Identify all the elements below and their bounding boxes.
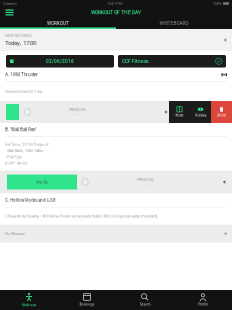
staticText: Heaviest load for 1 rep [5, 89, 42, 94]
staticText: 3 Rounds for Quality - 30 Hollow Rocks (… [5, 214, 157, 219]
staticText: Search [139, 302, 150, 306]
staticText: ▾ [14, 1, 17, 5]
staticText: (CAP: 8min) [5, 161, 27, 166]
staticText: NEXT BOOKING [5, 34, 32, 38]
staticText: Note [175, 113, 183, 117]
staticText: 02/06/2016 [46, 58, 74, 64]
button[interactable]: Note [169, 101, 190, 123]
staticText: CCF Fitness [122, 58, 148, 64]
button[interactable]: NEXT BOOKING [0, 29, 232, 51]
staticText: C. Hollow Rocks and L-Sit [5, 198, 55, 203]
button[interactable]: Workouts [0, 290, 58, 310]
staticText: Profile [198, 302, 208, 306]
button[interactable]: 0m 0s [7, 175, 77, 190]
staticText: Carrier [3, 1, 14, 6]
button[interactable]: Menu [0, 7, 19, 18]
staticText: History [194, 113, 206, 117]
button[interactable]: History [190, 101, 211, 123]
staticText: 9:41 PM [107, 1, 122, 6]
staticText: Bookings [79, 302, 94, 306]
button[interactable]: CCF Fitness [118, 55, 226, 67]
staticText: - Wall Balls, 12lb/14lbs [5, 148, 43, 153]
staticText: --/-- [142, 182, 148, 187]
button[interactable]: 02/06/2016 [6, 55, 114, 67]
staticText: 0m 0s [36, 180, 47, 185]
button[interactable]: WHITEBOARD [116, 18, 232, 29]
staticText: A. 1RM Thruster [5, 72, 38, 77]
button[interactable]: Delete [211, 101, 232, 123]
staticText: Today, 17:00 [5, 39, 36, 46]
staticText: B. "Wall Ball Fran" [5, 127, 36, 132]
staticText: Workouts [21, 303, 36, 307]
button[interactable]: No Measure [0, 225, 232, 243]
staticText: No Measure [5, 231, 25, 236]
button[interactable]: WORKOUT [0, 18, 116, 29]
staticText: Delete [216, 113, 226, 117]
staticText: --/-- [74, 112, 80, 117]
staticText: WORKOUT [47, 21, 69, 26]
staticText: For Time, 21/15/9 reps of: [5, 142, 49, 147]
staticText: 100% [213, 1, 222, 6]
staticText: PREVIOUS [137, 177, 153, 182]
staticText: PREVIOUS [69, 107, 85, 112]
button[interactable]: Profile [174, 290, 232, 310]
staticText: WHITEBOARD [159, 21, 188, 26]
staticText: WORKOUT OF THE DAY [91, 9, 141, 15]
staticText: - Pull Ups [5, 155, 22, 159]
button[interactable]: Bookings [58, 290, 116, 310]
button[interactable]: Search [116, 290, 174, 310]
